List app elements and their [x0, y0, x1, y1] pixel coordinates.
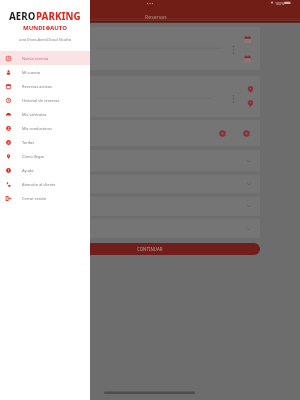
- button[interactable]: Historial de reservas: [0, 93, 90, 107]
- button[interactable]: Mis vehículos: [0, 107, 90, 121]
- staticText: PARKING: [36, 10, 81, 23]
- staticText: Atención al cliente: [22, 182, 56, 187]
- staticText: CONTINUAR: [137, 246, 163, 252]
- staticText: Nueva reserva: [22, 56, 49, 61]
- staticText: Mis conductores: [22, 126, 53, 131]
- staticText: Reservas: [145, 13, 167, 20]
- staticText: Ayuda: [22, 168, 34, 173]
- button[interactable]: Mi cuenta: [0, 65, 90, 79]
- button[interactable]: Nueva reserva: [0, 51, 90, 65]
- button[interactable]: Mis conductores: [0, 121, 90, 135]
- button[interactable]: Cerrar sesión: [0, 191, 90, 205]
- staticText: AERO: [9, 10, 36, 23]
- button[interactable]: Cómo llegar: [0, 149, 90, 163]
- staticText: MUNDI: [23, 24, 46, 32]
- staticText: Mi cuenta: [22, 70, 41, 75]
- staticText: Tarifas: [22, 140, 35, 145]
- staticText: una línea AeroCloud Studio: [0, 37, 90, 43]
- staticText: 100%: [275, 1, 285, 6]
- staticText: Cerrar sesión: [22, 196, 47, 201]
- staticText: Historial de reservas: [22, 98, 60, 103]
- button[interactable]: Reservas activas: [0, 79, 90, 93]
- staticText: Reservas activas: [22, 84, 52, 89]
- staticText: AUTO: [50, 24, 67, 32]
- button[interactable]: Tarifas: [0, 135, 90, 149]
- button[interactable]: Ayuda: [0, 163, 90, 177]
- button[interactable]: Atención al cliente: [0, 177, 90, 191]
- staticText: Mis vehículos: [22, 112, 47, 117]
- staticText: Cómo llegar: [22, 154, 45, 159]
